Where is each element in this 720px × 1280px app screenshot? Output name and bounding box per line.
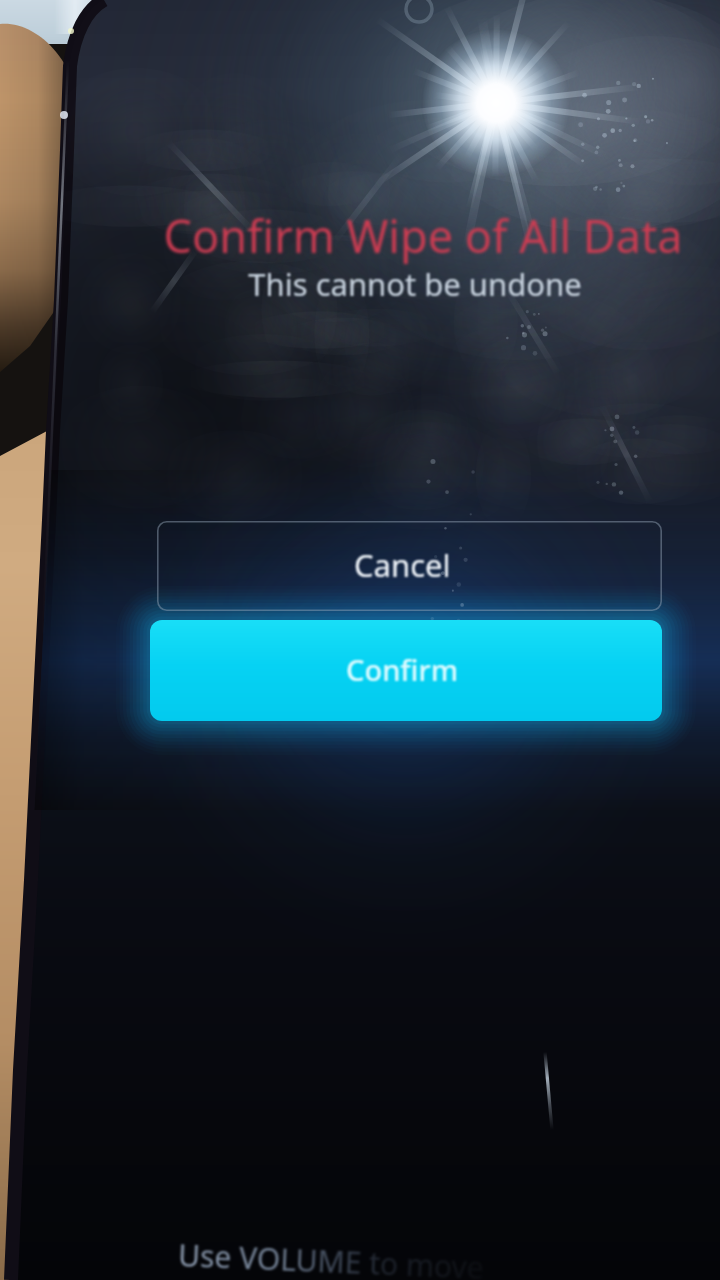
staticText: This cannot be undone bbox=[135, 263, 695, 307]
staticText: Use VOLUME to move bbox=[177, 1234, 485, 1280]
button[interactable]: Cancel bbox=[157, 521, 662, 611]
staticText: Cancel bbox=[354, 544, 451, 586]
button[interactable]: Confirm bbox=[150, 620, 662, 721]
staticText: Confirm Wipe of All Data bbox=[136, 205, 710, 267]
staticText: Confirm bbox=[346, 650, 459, 689]
